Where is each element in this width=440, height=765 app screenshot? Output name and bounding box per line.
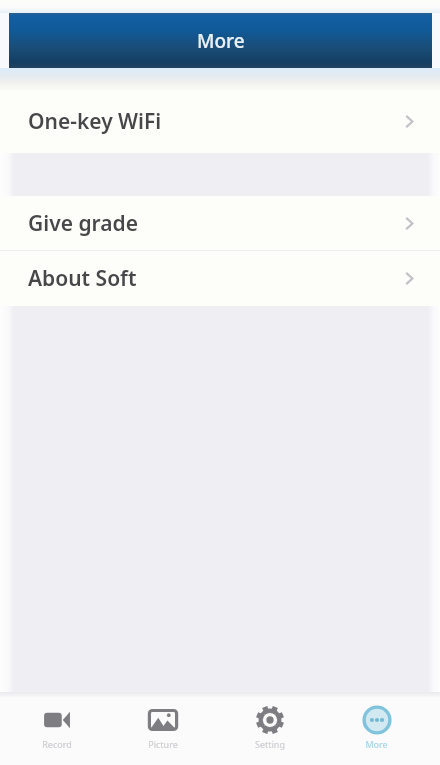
staticText: Picture [148, 738, 178, 750]
button[interactable]: More [323, 697, 430, 765]
staticText: Setting [255, 738, 285, 750]
button[interactable]: One-key WiFi [0, 90, 440, 153]
staticText: More [197, 28, 245, 54]
staticText: About Soft [28, 264, 137, 293]
staticText: More [365, 738, 388, 750]
staticText: One-key WiFi [28, 107, 162, 136]
button[interactable]: Picture [110, 697, 216, 765]
other: Open Give grade [405, 216, 414, 231]
button[interactable]: Give grade [0, 196, 440, 251]
button[interactable]: Record [4, 697, 110, 765]
other: Open One-key WiFi [405, 114, 414, 129]
button[interactable]: Setting [216, 697, 323, 765]
other: Open About Soft [405, 271, 414, 286]
staticText: Give grade [28, 209, 138, 238]
button[interactable]: About Soft [0, 251, 440, 306]
staticText: Record [42, 738, 72, 750]
